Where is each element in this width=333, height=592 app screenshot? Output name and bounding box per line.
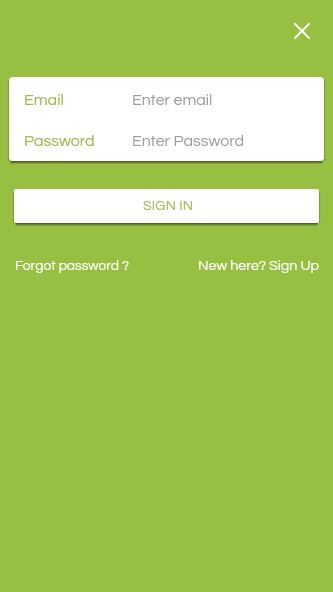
button[interactable]: Forgot password ?: [15, 259, 130, 273]
staticText: SIGN IN: [143, 199, 194, 213]
button[interactable]: Email: [9, 79, 324, 120]
button[interactable]: Close: [288, 17, 316, 45]
button[interactable]: Password: [9, 120, 324, 161]
staticText: Enter email: [132, 92, 213, 108]
staticText: Password: [24, 133, 132, 149]
button[interactable]: SIGN IN: [14, 189, 319, 223]
staticText: Forgot password ?: [15, 259, 130, 273]
staticText: New here? Sign Up: [198, 258, 319, 273]
staticText: Enter Password: [132, 133, 245, 149]
staticText: Email: [24, 92, 132, 108]
button[interactable]: New here? Sign Up: [198, 258, 319, 273]
